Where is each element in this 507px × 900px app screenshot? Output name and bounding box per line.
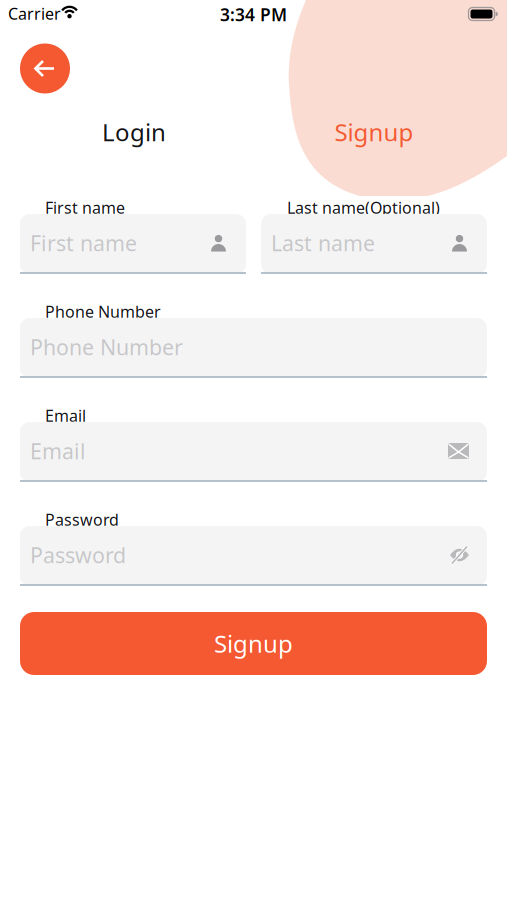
staticText: Last name [271,229,375,257]
staticText: Phone Number [45,301,161,322]
button[interactable]: Phone Number [20,318,487,378]
button[interactable]: Login [14,109,254,155]
button[interactable]: Signup [20,612,487,675]
staticText: Password [45,509,119,530]
button[interactable]: Email [20,422,487,482]
staticText: Carrier [8,3,61,24]
button[interactable]: Show password [450,546,469,564]
button[interactable]: Last name [261,214,487,274]
button[interactable]: First name [20,214,246,274]
staticText: Phone Number [30,333,183,361]
button[interactable]: Back [20,43,70,93]
staticText: Password [30,541,126,569]
staticText: First name [45,197,125,218]
staticText: Signup [334,116,413,148]
button[interactable]: Signup [254,109,494,155]
staticText: Email [45,405,86,426]
staticText: Login [102,116,166,148]
staticText: Signup [214,628,293,659]
staticText: Email [30,437,86,465]
staticText: First name [30,229,137,257]
staticText: 3:34 PM [220,3,287,26]
button[interactable]: Password [20,526,487,586]
staticText: Last name(Optional) [287,197,440,218]
